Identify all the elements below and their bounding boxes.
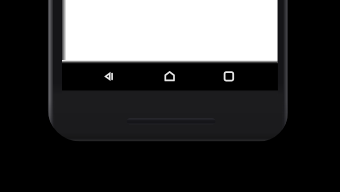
button[interactable]: Back (86, 61, 132, 90)
button[interactable]: Recent apps (206, 61, 252, 90)
button[interactable]: Home (147, 61, 193, 90)
